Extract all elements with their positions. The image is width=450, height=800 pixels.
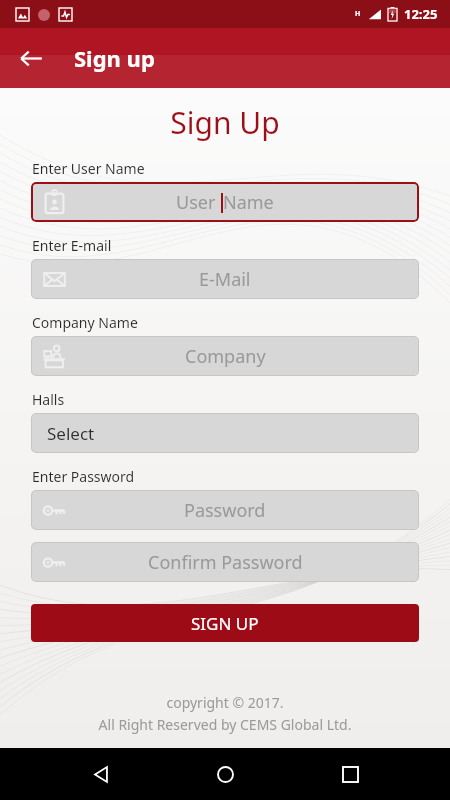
staticText: Company (185, 344, 266, 369)
staticText: E-Mail (199, 267, 251, 292)
staticText: copyright © 2017. (31, 693, 419, 712)
staticText: Sign up (74, 43, 155, 73)
staticText: Password (184, 498, 266, 523)
staticText: SIGN UP (191, 612, 259, 635)
button[interactable]: Password (31, 490, 419, 530)
staticText: Company Name (32, 313, 138, 332)
button[interactable]: User (31, 182, 419, 222)
button[interactable]: Confirm Password (31, 542, 419, 582)
button[interactable]: Back (77, 750, 125, 798)
staticText: All Right Reserved by CEMS Global Ltd. (31, 715, 419, 734)
button[interactable]: Back (8, 35, 54, 81)
button[interactable]: Recent apps (326, 750, 374, 798)
button[interactable]: E-Mail (31, 259, 419, 299)
staticText: 12:25 (404, 5, 438, 23)
staticText: H (355, 9, 361, 19)
staticText: Enter E-mail (32, 236, 112, 255)
button[interactable]: Select (31, 413, 419, 453)
staticText: Select (47, 422, 95, 445)
button[interactable]: Company (31, 336, 419, 376)
button[interactable]: Home (201, 750, 249, 798)
staticText: Sign Up (31, 102, 419, 143)
button[interactable]: SIGN UP (31, 604, 419, 642)
staticText: Confirm Password (148, 550, 303, 575)
staticText: Halls (32, 390, 65, 409)
staticText: Enter Password (32, 467, 135, 486)
staticText: User (176, 190, 221, 215)
staticText: Name (223, 190, 274, 215)
staticText: Enter User Name (32, 159, 145, 178)
